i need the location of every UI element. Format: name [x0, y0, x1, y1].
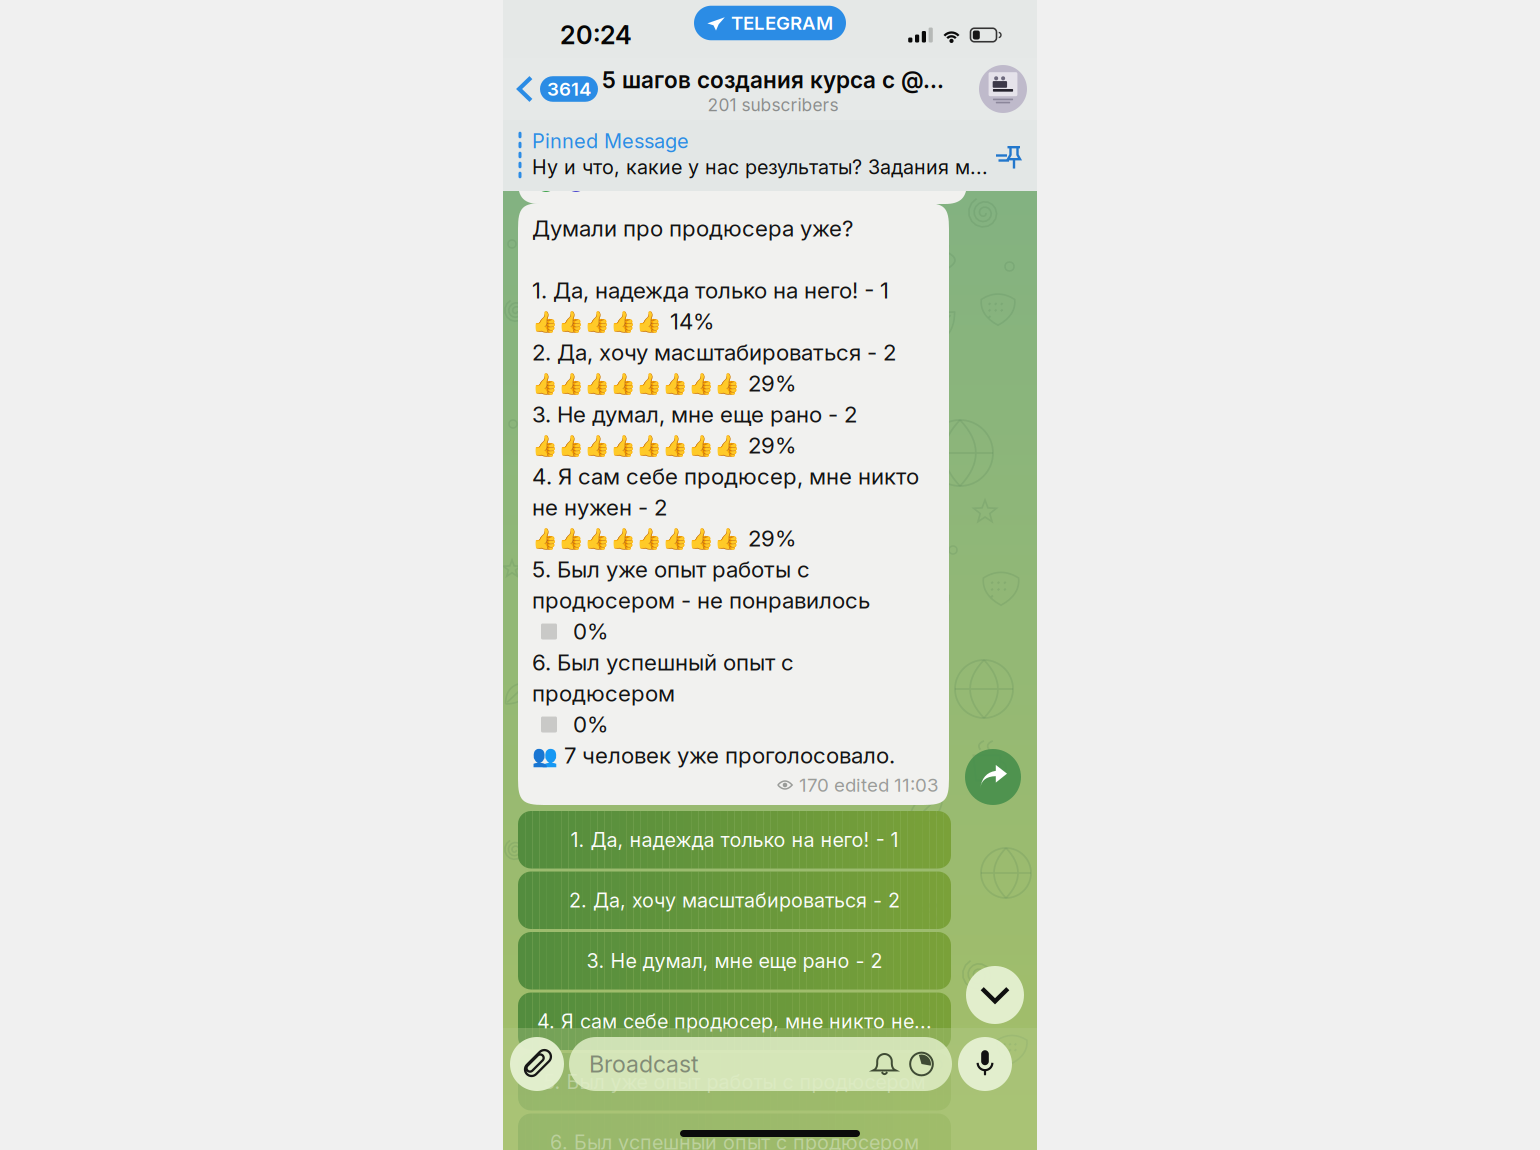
button[interactable]: 3. Не думал, мне еще рано - 2: [518, 932, 951, 989]
button[interactable]: 4. Я сам себе продюсер, мне никто не...: [518, 992, 951, 1050]
staticText: продюсером: [532, 680, 675, 707]
button[interactable]: Back: [503, 63, 598, 114]
button[interactable]: 1. Да, надежда только на него! - 1: [518, 811, 951, 868]
staticText: Ну и что, какие у нас результаты? Задани…: [532, 155, 988, 179]
staticText: 4. Я сам себе продюсер, мне никто не...: [537, 1009, 932, 1033]
staticText: 3. Не думал, мне еще рано - 2: [532, 401, 857, 428]
button[interactable]: Statistics: [898, 1050, 952, 1077]
staticText: Думали про продюсера уже?: [532, 215, 853, 242]
button[interactable]: Scroll to bottom: [966, 966, 1024, 1024]
staticText: 👍👍👍👍👍👍👍👍: [532, 526, 740, 551]
staticText: 3. Не думал, мне еще рано - 2: [586, 949, 882, 973]
staticText: 2. Да, хочу масштабироваться - 2: [532, 339, 896, 366]
staticText: 201 subscribers: [707, 94, 838, 115]
staticText: Pinned Message: [532, 129, 689, 153]
staticText: 3614: [547, 78, 591, 100]
staticText: 👥: [532, 743, 558, 768]
staticText: 170 edited 11:03: [799, 774, 939, 796]
staticText: 👍👍👍👍👍: [532, 309, 662, 334]
staticText: 👍👍👍👍👍👍👍👍: [532, 371, 740, 396]
button[interactable]: Attach: [510, 1037, 564, 1091]
staticText: 5. Был уже опыт работы с: [532, 556, 810, 583]
staticText: 0%: [573, 711, 608, 738]
button[interactable]: 2. Да, хочу масштабироваться - 2: [518, 871, 951, 929]
button[interactable]: 6. Был успешный опыт с продюсером: [518, 1113, 951, 1150]
staticText: 4. Я сам себе продюсер, мне никто: [532, 463, 919, 490]
button[interactable]: Channel info: [979, 65, 1037, 113]
staticText: 👍👍👍👍👍👍👍👍: [532, 433, 740, 458]
button[interactable]: 5. Был уже опыт работы с продюсером: [518, 1053, 951, 1110]
staticText: 5. Был уже опыт работы с продюсером: [543, 1070, 925, 1094]
staticText: 0%: [573, 618, 608, 645]
staticText: 2. Да, хочу масштабироваться - 2: [569, 888, 900, 912]
staticText: 20:24: [560, 20, 632, 50]
button[interactable]: Pinned Message: [503, 120, 1037, 191]
staticText: Broadcast: [589, 1050, 699, 1078]
staticText: 1. Да, надежда только на него! - 1: [570, 828, 898, 852]
staticText: 29%: [748, 370, 796, 397]
staticText: 6. Был успешный опыт с: [532, 649, 794, 676]
staticText: 29%: [748, 432, 796, 459]
staticText: TELEGRAM: [731, 12, 833, 34]
staticText: продюсером - не понравилось: [532, 587, 870, 614]
staticText: 6. Был успешный опыт с продюсером: [550, 1130, 919, 1150]
staticText: 7 человек уже проголосовало.: [564, 742, 895, 769]
staticText: 29%: [748, 525, 796, 552]
staticText: 14%: [670, 308, 714, 335]
staticText: 5 шагов создания курса с @...: [602, 66, 944, 94]
staticText: 1. Да, надежда только на него! - 1: [532, 277, 889, 304]
button[interactable]: Voice message: [958, 1037, 1012, 1091]
button[interactable]: Forward: [965, 749, 1021, 805]
button[interactable]: Notifications: [871, 1050, 898, 1077]
staticText: не нужен - 2: [532, 494, 667, 521]
